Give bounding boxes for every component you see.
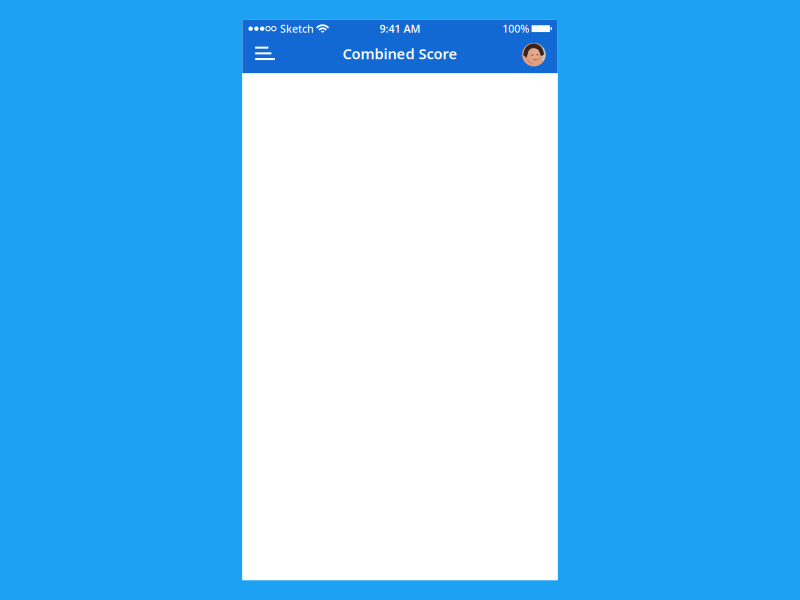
staticText: 9:41 AM <box>379 22 420 36</box>
staticText: Sketch <box>280 22 314 36</box>
staticText: Combined Score <box>342 44 457 63</box>
button[interactable]: Menu <box>242 40 285 69</box>
button[interactable]: Profile <box>512 38 558 70</box>
staticText: 100% <box>502 22 529 36</box>
